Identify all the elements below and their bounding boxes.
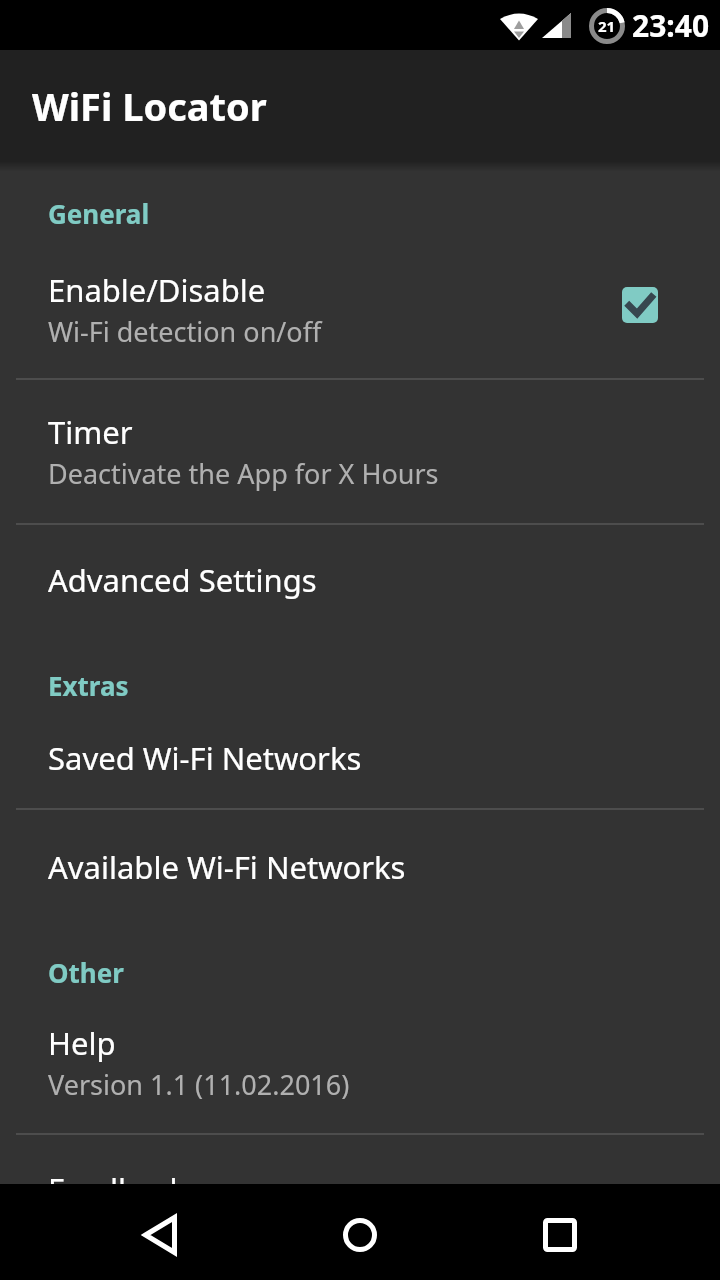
staticText: Available Wi-Fi Networks <box>48 846 406 888</box>
staticText: Advanced Settings <box>48 559 317 601</box>
staticText: Enable/Disable <box>48 269 266 311</box>
staticText: Other <box>48 955 124 990</box>
button[interactable] <box>460 1187 660 1280</box>
button[interactable] <box>260 1187 460 1280</box>
staticText: Extras <box>48 668 129 703</box>
button[interactable]: Available Wi-Fi Networks <box>0 812 720 922</box>
staticText: Timer <box>48 411 133 453</box>
button[interactable]: Feedback <box>0 1154 720 1184</box>
staticText: Deactivate the App for X Hours <box>48 455 439 492</box>
staticText: 21 <box>598 16 616 36</box>
staticText: Feedback <box>48 1168 187 1184</box>
button[interactable] <box>622 287 658 323</box>
staticText: WiFi Locator <box>32 80 267 132</box>
staticText: Wi-Fi detection on/off <box>48 313 322 350</box>
staticText: Saved Wi-Fi Networks <box>48 737 362 779</box>
button[interactable] <box>60 1187 260 1280</box>
button[interactable]: Saved Wi-Fi Networks <box>0 704 720 812</box>
staticText: 23:40 <box>632 5 710 46</box>
button[interactable]: Enable/Disable <box>0 240 720 378</box>
button[interactable]: Help <box>0 992 720 1132</box>
staticText: Help <box>48 1022 116 1064</box>
button[interactable]: Advanced Settings <box>0 525 720 635</box>
staticText: General <box>48 196 150 231</box>
button[interactable]: Timer <box>0 380 720 523</box>
staticText: Version 1.1 (11.02.2016) <box>48 1066 350 1103</box>
